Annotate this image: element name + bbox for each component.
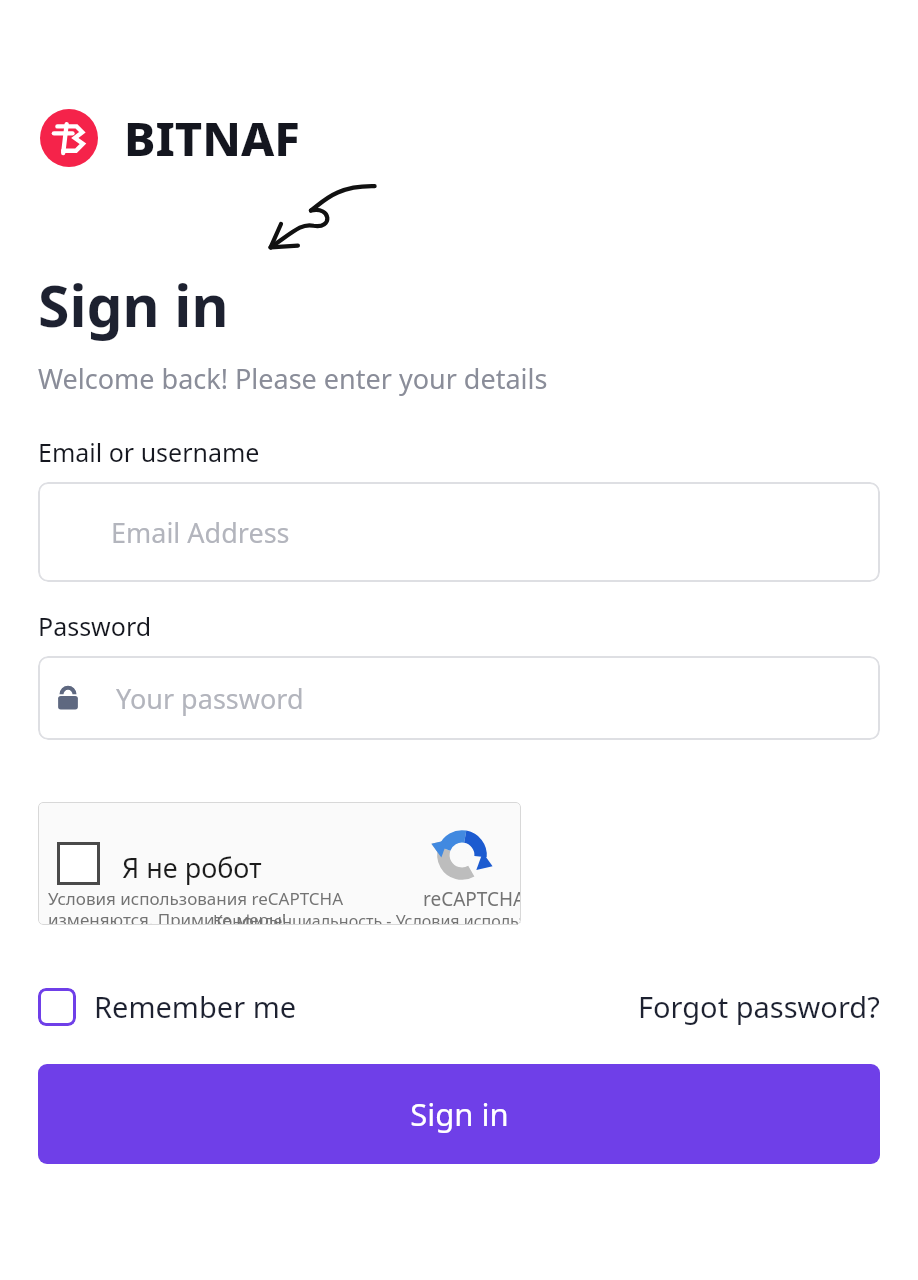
staticText: Your password xyxy=(116,680,304,717)
staticText: Sign in xyxy=(38,266,229,344)
staticText: Forgot password? xyxy=(638,987,880,1026)
button[interactable]: BITNAF xyxy=(40,106,300,170)
staticText: Welcome back! Please enter your details xyxy=(38,360,548,397)
button[interactable]: Your password xyxy=(38,656,880,740)
staticText: Email or username xyxy=(38,435,260,469)
staticText: Password xyxy=(38,609,152,643)
button[interactable]: Email Address xyxy=(38,482,880,582)
staticText: reCAPTCHA xyxy=(423,886,521,912)
staticText: BITNAF xyxy=(124,106,300,170)
button[interactable]: Forgot password? xyxy=(638,987,880,1026)
staticText: Remember me xyxy=(94,987,297,1026)
staticText: Условия использования reCAPTCHA xyxy=(48,887,344,910)
button[interactable]: Remember me xyxy=(38,987,297,1026)
button[interactable]: I am not a robot checkbox xyxy=(38,802,521,925)
staticText: Конфиденциальность - Условия использован… xyxy=(213,910,521,925)
button[interactable]: Sign in xyxy=(38,1064,880,1164)
staticText: Sign in xyxy=(410,1093,509,1135)
staticText: Email Address xyxy=(111,514,290,551)
staticText: изменяются. Примите меры! xyxy=(48,908,287,925)
button[interactable]: I am not a robot checkbox xyxy=(57,842,100,885)
staticText: Я не робот xyxy=(122,849,262,886)
